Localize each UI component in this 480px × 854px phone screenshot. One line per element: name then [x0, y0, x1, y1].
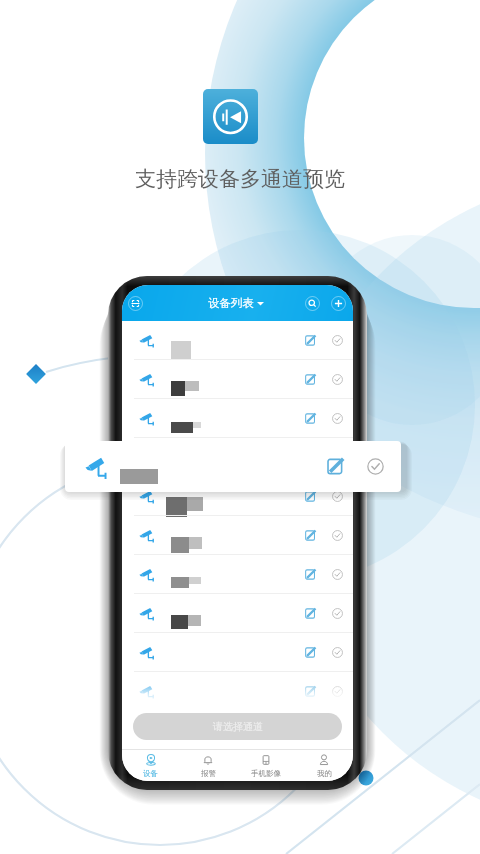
- staticText: 报警: [201, 769, 216, 778]
- button[interactable]: 请选择通道: [133, 713, 342, 740]
- button[interactable]: 设备列表: [208, 296, 264, 310]
- button[interactable]: [122, 399, 353, 438]
- button[interactable]: 我的: [295, 750, 353, 781]
- button[interactable]: Scan: [122, 285, 353, 321]
- staticText: 手机影像: [251, 769, 281, 778]
- button[interactable]: [122, 438, 353, 477]
- staticText: 设备: [143, 769, 158, 778]
- button[interactable]: 设备: [122, 750, 179, 781]
- button[interactable]: [122, 321, 353, 360]
- button[interactable]: [65, 441, 401, 492]
- staticText: 支持跨设备多通道预览: [135, 166, 345, 192]
- button[interactable]: [122, 360, 353, 399]
- button[interactable]: [122, 672, 353, 711]
- staticText: 请选择通道: [213, 720, 263, 733]
- button[interactable]: [122, 633, 353, 672]
- staticText: 设备列表: [208, 296, 254, 310]
- button[interactable]: [122, 477, 353, 516]
- button[interactable]: [122, 516, 353, 555]
- button[interactable]: [122, 594, 353, 633]
- button[interactable]: Scan: [128, 296, 143, 311]
- button[interactable]: 报警: [179, 750, 237, 781]
- staticText: 我的: [317, 769, 332, 778]
- button[interactable]: Add: [331, 296, 346, 311]
- button[interactable]: [122, 555, 353, 594]
- button[interactable]: 手机影像: [237, 750, 295, 781]
- button[interactable]: Search: [305, 296, 320, 311]
